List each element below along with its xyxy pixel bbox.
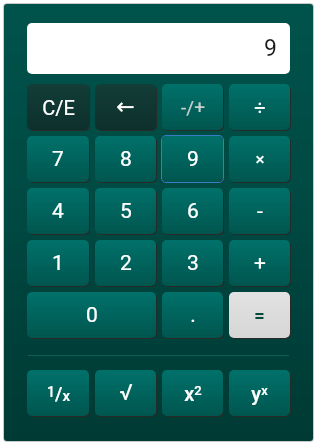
button[interactable]: Clear entry [27, 84, 89, 130]
staticText: 5 [120, 199, 132, 224]
staticText: 0 [86, 303, 98, 328]
button[interactable]: Power [229, 370, 290, 416]
button[interactable]: One [27, 240, 89, 286]
staticText: 8 [120, 147, 132, 172]
button[interactable]: Nine [162, 136, 223, 182]
staticText: 4 [52, 199, 64, 224]
button[interactable]: Display shows 9 [27, 23, 290, 74]
button[interactable]: Eight [95, 136, 156, 182]
staticText: 6 [187, 199, 199, 224]
staticText: 1/x [47, 382, 70, 405]
button[interactable]: Decimal point [162, 292, 223, 338]
staticText: × [255, 149, 265, 169]
button[interactable]: Two [95, 240, 156, 286]
staticText: yx [251, 382, 268, 405]
button[interactable]: Five [95, 188, 156, 234]
button[interactable]: Seven [27, 136, 89, 182]
staticText: 2 [120, 251, 132, 276]
staticText: = [254, 304, 265, 326]
button[interactable]: Backspace [95, 84, 156, 130]
staticText: ÷ [254, 96, 266, 119]
staticText: 9 [187, 147, 199, 172]
staticText: √ [119, 380, 133, 406]
button[interactable]: Zero [27, 292, 156, 338]
button[interactable]: Three [162, 240, 223, 286]
button[interactable]: Six [162, 188, 223, 234]
staticText: + [254, 251, 266, 276]
staticText: 9 [264, 35, 277, 62]
button[interactable]: Negate [162, 84, 223, 130]
button[interactable]: Subtract [229, 188, 290, 234]
button[interactable]: Reciprocal [27, 370, 89, 416]
staticText: . [190, 303, 196, 328]
button[interactable]: Equals [229, 292, 290, 338]
staticText: C/E [42, 96, 75, 119]
button[interactable]: Four [27, 188, 89, 234]
staticText: - [257, 199, 263, 224]
staticText: x2 [184, 382, 202, 405]
button[interactable]: Add [229, 240, 290, 286]
button[interactable]: Square root [95, 370, 156, 416]
staticText: 7 [52, 147, 64, 172]
staticText: -/+ [181, 96, 205, 118]
staticText: ← [116, 94, 135, 120]
staticText: 1 [52, 251, 64, 276]
button[interactable]: Square [162, 370, 223, 416]
staticText: 3 [187, 251, 199, 276]
button[interactable]: Multiply [229, 136, 290, 182]
button[interactable]: Divide [229, 84, 290, 130]
